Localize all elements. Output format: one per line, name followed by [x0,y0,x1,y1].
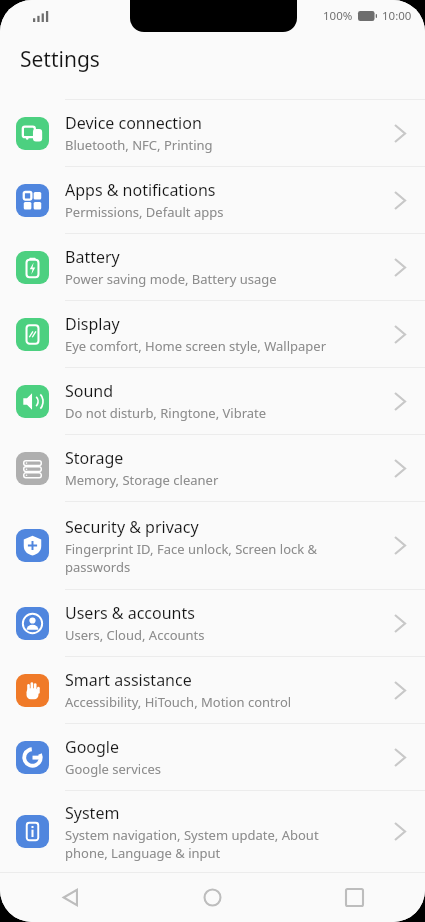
button[interactable]: Display [0,301,425,367]
button[interactable]: Google [0,724,425,790]
staticText: Power saving mode, Battery usage [65,270,277,288]
staticText: Users & accounts [65,602,195,624]
staticText: Accessibility, HiTouch, Motion control [65,693,292,711]
staticText: Storage [65,447,124,469]
staticText: Fingerprint ID, Face unlock, Screen lock… [65,540,318,576]
staticText: Battery [65,246,120,268]
staticText: Users, Cloud, Accounts [65,626,205,644]
staticText: Apps & notifications [65,179,216,201]
staticText: Google [65,736,120,758]
staticText: System [65,802,120,824]
button[interactable]: Battery [0,234,425,300]
button[interactable]: Device connection [0,100,425,166]
staticText: Permissions, Default apps [65,203,224,221]
button[interactable]: Users & accounts [0,590,425,656]
button[interactable]: Apps & notifications [0,167,425,233]
staticText: 100% [323,8,353,24]
staticText: System navigation, System update, About … [65,826,319,862]
button[interactable]: Back [0,873,141,922]
button[interactable]: Recent apps [283,873,425,922]
staticText: Smart assistance [65,669,192,691]
staticText: Eye comfort, Home screen style, Wallpape… [65,337,327,355]
button[interactable]: Smart assistance [0,657,425,723]
staticText: Google services [65,760,161,778]
button[interactable]: Home [141,873,283,922]
button[interactable]: Sound [0,368,425,434]
staticText: Memory, Storage cleaner [65,471,219,489]
staticText: Settings [20,45,100,74]
staticText: Device connection [65,112,202,134]
staticText: Security & privacy [65,516,199,538]
staticText: Bluetooth, NFC, Printing [65,136,213,154]
staticText: Sound [65,380,114,402]
button[interactable]: System [0,791,425,872]
button[interactable]: Storage [0,435,425,501]
button[interactable]: Security & privacy [0,502,425,589]
staticText: Display [65,313,120,335]
staticText: 10:00 [382,8,412,24]
staticText: Do not disturb, Ringtone, Vibrate [65,404,267,422]
